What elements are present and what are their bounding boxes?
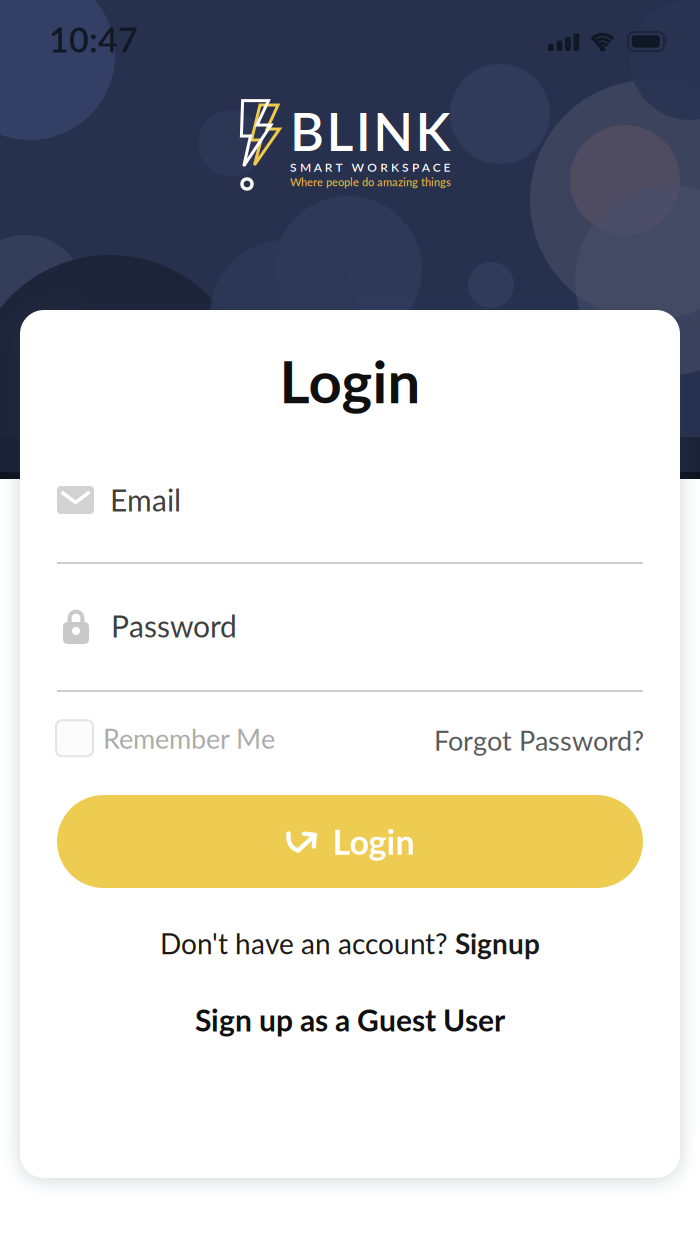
button[interactable]: Forgot Password? — [434, 724, 644, 756]
staticText: L — [326, 100, 353, 162]
button[interactable]: Remember Me — [56, 720, 275, 756]
staticText: R — [325, 160, 333, 174]
staticText: O — [367, 160, 377, 174]
staticText: Login — [279, 346, 420, 416]
staticText: Sign up as a Guest User — [195, 1002, 505, 1038]
staticText: Remember Me — [103, 722, 275, 754]
button[interactable]: Sign up as a Guest User — [195, 1002, 505, 1038]
button[interactable]: Password — [57, 604, 643, 692]
staticText: I — [356, 100, 371, 162]
staticText: K — [391, 160, 399, 174]
staticText: M — [300, 160, 311, 174]
button[interactable]: Login — [57, 795, 643, 888]
staticText: T — [336, 160, 343, 174]
staticText: B — [290, 100, 324, 162]
button[interactable]: Email — [57, 482, 643, 564]
staticText: A — [314, 160, 322, 174]
staticText: W — [351, 160, 364, 174]
staticText: C — [433, 160, 441, 174]
staticText: Where people do amazing things — [290, 175, 451, 188]
staticText: Login — [332, 821, 414, 862]
staticText: P — [412, 160, 419, 174]
staticText: A — [422, 160, 430, 174]
staticText: N — [373, 100, 413, 162]
staticText: S — [402, 160, 409, 174]
staticText: S — [290, 160, 297, 174]
staticText: R — [380, 160, 388, 174]
staticText: E — [444, 160, 451, 174]
button[interactable]: Don't have an account? Signup — [160, 927, 540, 960]
staticText: Password — [111, 608, 237, 644]
staticText: Forgot Password? — [434, 724, 644, 756]
staticText: K — [416, 100, 451, 162]
staticText: Don't have an account? Signup — [160, 927, 540, 960]
staticText: 10:47 — [49, 19, 138, 60]
staticText: Email — [110, 482, 181, 518]
